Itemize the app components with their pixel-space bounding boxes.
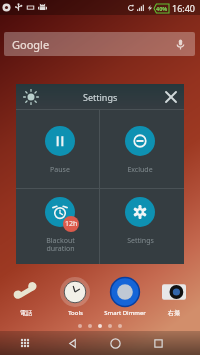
button[interactable]: Google: [4, 32, 195, 56]
staticText: Pause: [50, 165, 70, 175]
staticText: 右撮: [168, 309, 180, 317]
button[interactable]: Back: [50, 331, 94, 355]
staticText: Tools: [68, 309, 83, 317]
button[interactable]: Tools: [51, 277, 99, 317]
button[interactable]: Close: [158, 84, 184, 109]
staticText: Settings: [83, 91, 118, 103]
staticText: Google: [12, 37, 50, 52]
button[interactable]: Pause: [16, 110, 99, 188]
button[interactable]: 右撮: [150, 277, 198, 317]
staticText: 12h: [65, 219, 78, 229]
button[interactable]: 電話: [2, 277, 50, 317]
staticText: 16:40: [172, 2, 196, 14]
button[interactable]: Recents: [137, 331, 180, 355]
staticText: Smart Dimmer: [104, 309, 146, 317]
button[interactable]: Exclude: [100, 110, 184, 188]
staticText: Blackout duration: [46, 236, 75, 253]
button[interactable]: Home: [94, 331, 137, 355]
staticText: 40%: [156, 5, 168, 12]
button[interactable]: Apps: [0, 331, 50, 355]
button[interactable]: Smart Dimmer: [101, 277, 149, 317]
staticText: 電話: [20, 309, 32, 317]
staticText: Settings: [127, 236, 154, 246]
staticText: Exclude: [127, 165, 153, 175]
button[interactable]: Settings: [100, 189, 184, 264]
button[interactable]: 12h: [16, 189, 99, 264]
